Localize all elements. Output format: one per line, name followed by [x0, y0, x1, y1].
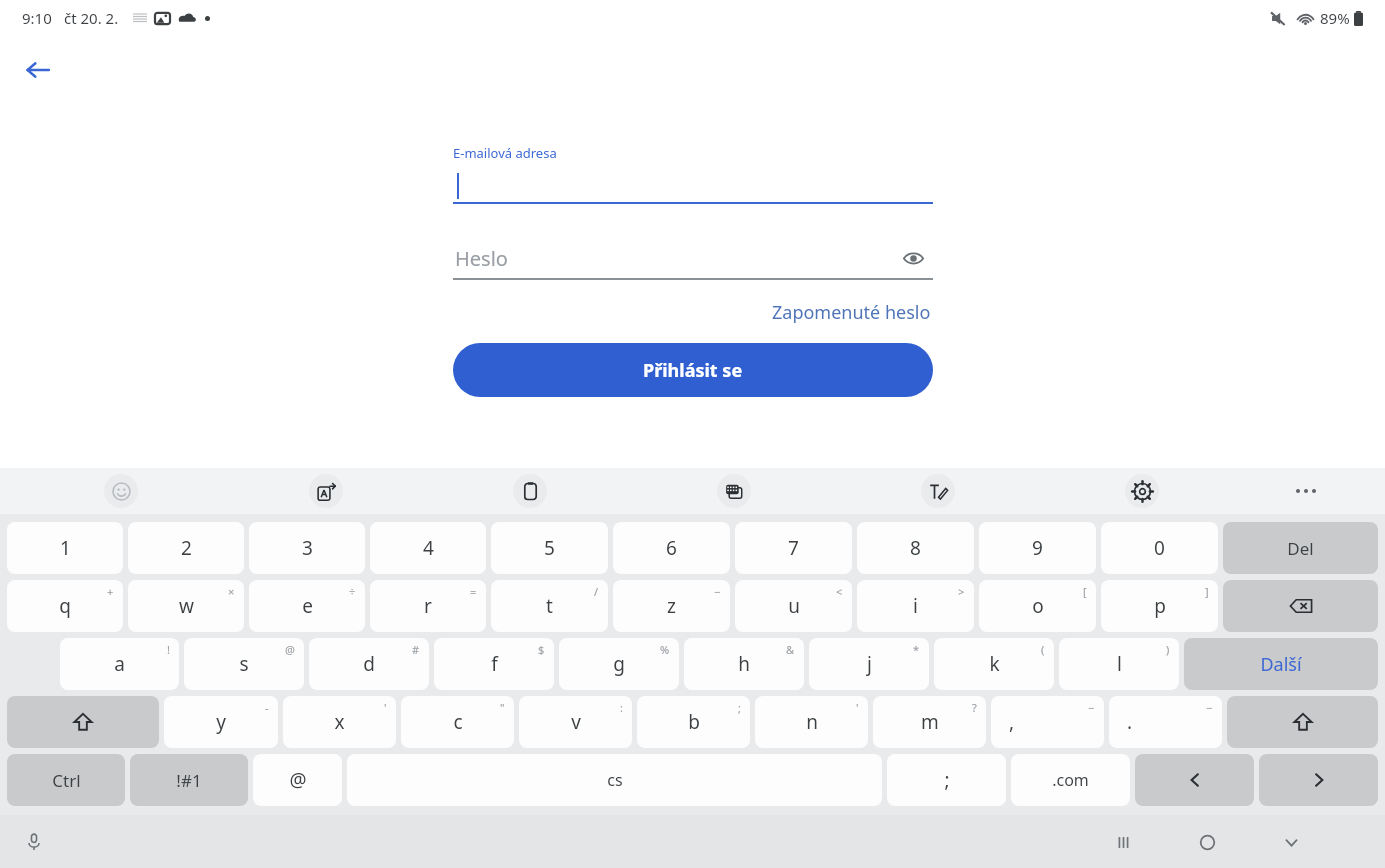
button[interactable]: c: [401, 696, 514, 748]
button[interactable]: Emoji: [18, 468, 223, 514]
button[interactable]: Move cursor right: [1259, 754, 1378, 806]
button[interactable]: .com: [1011, 754, 1130, 806]
staticText: a: [114, 651, 125, 677]
button[interactable]: w: [128, 580, 244, 632]
button[interactable]: Ctrl: [7, 754, 125, 806]
button[interactable]: Zapomenuté heslo: [770, 296, 933, 329]
staticText: 6: [666, 535, 677, 561]
button[interactable]: b: [637, 696, 750, 748]
button[interactable]: Recent apps: [1099, 818, 1147, 866]
button[interactable]: cs: [347, 754, 882, 806]
staticText: 3: [302, 535, 313, 561]
button[interactable]: s: [184, 638, 304, 690]
button[interactable]: Backspace: [1223, 580, 1378, 632]
button[interactable]: 4: [370, 522, 486, 574]
staticText: *: [913, 642, 920, 657]
staticText: ;: [738, 700, 741, 715]
button[interactable]: i: [857, 580, 974, 632]
staticText: 8: [910, 535, 921, 561]
button[interactable]: x: [283, 696, 396, 748]
button[interactable]: Přihlásit se: [453, 343, 933, 397]
button[interactable]: n: [755, 696, 868, 748]
button[interactable]: Home: [1183, 818, 1231, 866]
button[interactable]: 2: [128, 522, 244, 574]
button[interactable]: @: [253, 754, 342, 806]
staticText: c: [453, 709, 463, 735]
staticText: d: [363, 651, 375, 677]
staticText: /: [594, 584, 599, 599]
button[interactable]: k: [934, 638, 1054, 690]
button[interactable]: 7: [735, 522, 852, 574]
staticText: Heslo: [455, 245, 508, 272]
staticText: q: [59, 593, 71, 619]
staticText: :: [620, 700, 623, 715]
button[interactable]: Keyboard modes: [632, 468, 836, 514]
button[interactable]: Clipboard: [428, 468, 632, 514]
staticText: E-mailová adresa: [453, 144, 557, 162]
button[interactable]: Show password: [893, 238, 933, 278]
button[interactable]: [453, 170, 933, 202]
staticText: (: [1041, 642, 1045, 657]
staticText: l: [1117, 651, 1122, 677]
button[interactable]: z: [613, 580, 730, 632]
button[interactable]: l: [1059, 638, 1179, 690]
button[interactable]: o: [979, 580, 1096, 632]
staticText: v: [571, 709, 581, 735]
button[interactable]: e: [249, 580, 365, 632]
button[interactable]: Move cursor left: [1135, 754, 1254, 806]
button[interactable]: More options: [1244, 468, 1367, 514]
button[interactable]: j: [809, 638, 929, 690]
button[interactable]: Voice input: [14, 822, 54, 862]
button[interactable]: Translate: [223, 468, 428, 514]
button[interactable]: 0: [1101, 522, 1218, 574]
button[interactable]: d: [309, 638, 429, 690]
button[interactable]: Handwriting: [836, 468, 1040, 514]
button[interactable]: 3: [249, 522, 365, 574]
staticText: +: [107, 584, 114, 599]
staticText: −: [1206, 700, 1213, 715]
staticText: n: [806, 709, 818, 735]
staticText: o: [1032, 593, 1044, 619]
button[interactable]: Shift: [1227, 696, 1378, 748]
button[interactable]: 5: [491, 522, 608, 574]
button[interactable]: f: [434, 638, 554, 690]
button[interactable]: 8: [857, 522, 974, 574]
button[interactable]: t: [491, 580, 608, 632]
staticText: Del: [1287, 537, 1314, 560]
button[interactable]: u: [735, 580, 852, 632]
button[interactable]: 9: [979, 522, 1096, 574]
button[interactable]: 1: [7, 522, 123, 574]
staticText: t: [546, 593, 553, 619]
button[interactable]: q: [7, 580, 123, 632]
staticText: cs: [607, 769, 623, 791]
button[interactable]: ;: [887, 754, 1006, 806]
button[interactable]: m: [873, 696, 986, 748]
staticText: 5: [544, 535, 555, 561]
button[interactable]: Další: [1184, 638, 1378, 690]
button[interactable]: y: [164, 696, 278, 748]
staticText: −: [714, 584, 721, 599]
button[interactable]: 6: [613, 522, 730, 574]
staticText: k: [989, 651, 1000, 677]
button[interactable]: ,: [991, 696, 1104, 748]
staticText: u: [788, 593, 800, 619]
staticText: e: [302, 593, 313, 619]
button[interactable]: h: [684, 638, 804, 690]
button[interactable]: Del: [1223, 522, 1378, 574]
button[interactable]: Settings: [1040, 468, 1244, 514]
button[interactable]: Hide keyboard: [1267, 818, 1315, 866]
button[interactable]: Back: [14, 46, 62, 94]
staticText: !#1: [176, 769, 202, 792]
staticText: Ctrl: [52, 769, 81, 792]
button[interactable]: .: [1109, 696, 1222, 748]
button[interactable]: p: [1101, 580, 1218, 632]
staticText: !: [167, 642, 170, 657]
button[interactable]: r: [370, 580, 486, 632]
button[interactable]: g: [559, 638, 679, 690]
button[interactable]: v: [519, 696, 632, 748]
button[interactable]: Shift: [7, 696, 159, 748]
button[interactable]: !#1: [130, 754, 248, 806]
button[interactable]: Heslo: [453, 238, 933, 278]
staticText: Přihlásit se: [643, 358, 743, 383]
button[interactable]: a: [60, 638, 179, 690]
